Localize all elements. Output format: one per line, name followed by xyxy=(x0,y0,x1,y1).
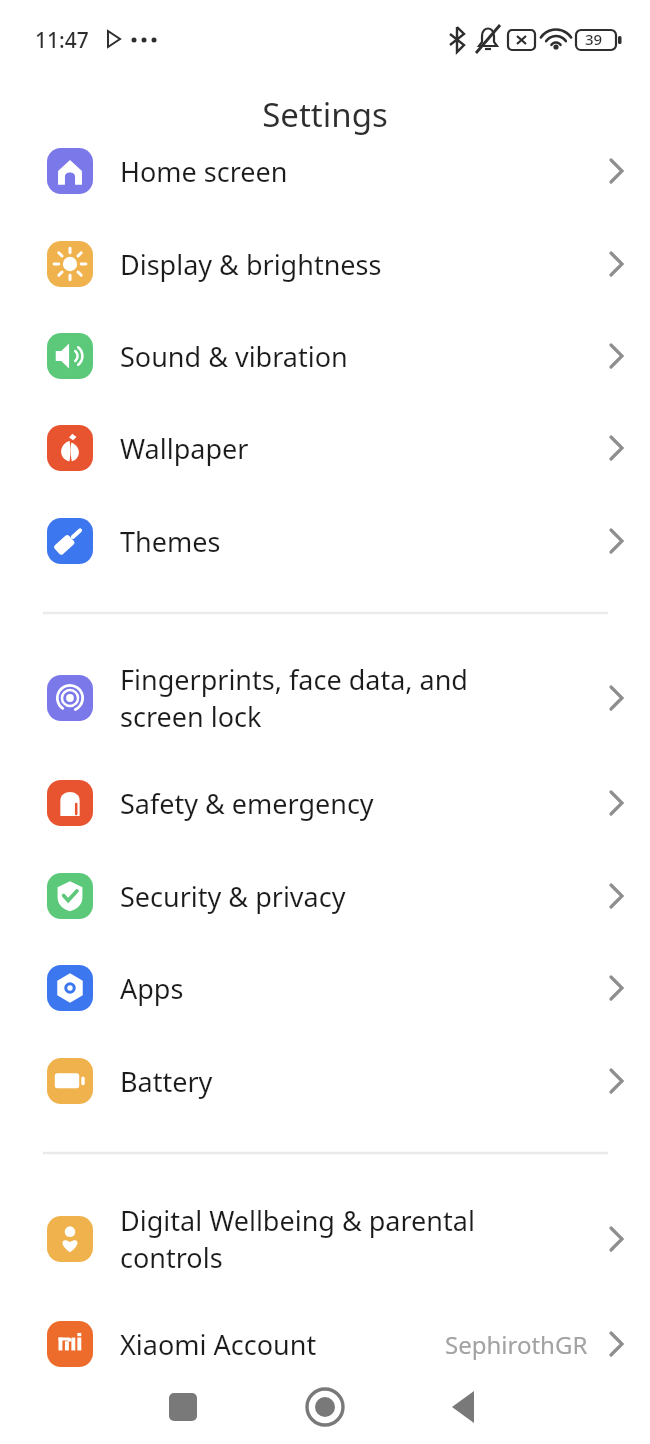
staticText: Xiaomi Account xyxy=(120,1326,317,1363)
button[interactable]: Apps xyxy=(0,942,650,1034)
staticText: Safety & emergency xyxy=(120,785,374,822)
button[interactable]: Digital Wellbeing & parental xyxy=(0,1193,650,1285)
staticText: Settings xyxy=(0,92,650,137)
button[interactable]: Safety & emergency xyxy=(0,757,650,849)
staticText: Digital Wellbeing & parental xyxy=(120,1202,475,1239)
staticText: Home screen xyxy=(120,153,288,190)
staticText: Battery xyxy=(120,1063,213,1100)
button[interactable]: Back xyxy=(435,1377,495,1437)
button[interactable]: Home xyxy=(295,1377,355,1437)
button[interactable]: Themes xyxy=(0,495,650,587)
staticText: Apps xyxy=(120,970,184,1007)
staticText: Sound & vibration xyxy=(120,338,348,375)
button[interactable]: Home screen xyxy=(0,125,650,217)
button[interactable]: Sound & vibration xyxy=(0,310,650,402)
button[interactable]: Fingerprints, face data, and xyxy=(0,652,650,744)
staticText: Security & privacy xyxy=(120,878,346,915)
staticText: Themes xyxy=(120,523,221,560)
staticText: Wallpaper xyxy=(120,430,249,467)
button[interactable]: Display & brightness xyxy=(0,218,650,310)
staticText: 11:47 xyxy=(35,26,89,55)
button[interactable]: Recents xyxy=(153,1377,213,1437)
staticText: Fingerprints, face data, and xyxy=(120,661,468,698)
button[interactable]: Security & privacy xyxy=(0,850,650,942)
button[interactable]: Xiaomi Account xyxy=(0,1298,650,1390)
staticText: controls xyxy=(120,1239,223,1276)
staticText: 39 xyxy=(585,29,603,49)
staticText: Display & brightness xyxy=(120,246,382,283)
staticText: SephirothGR xyxy=(445,1328,588,1361)
button[interactable]: Wallpaper xyxy=(0,402,650,494)
staticText: screen lock xyxy=(120,698,262,735)
button[interactable]: Battery xyxy=(0,1035,650,1127)
